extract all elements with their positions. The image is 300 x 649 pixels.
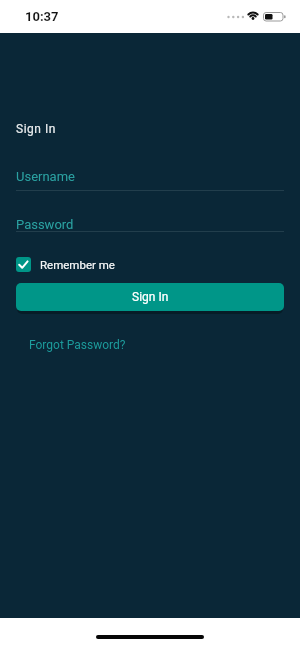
staticText: Forgot Password? — [29, 338, 126, 352]
staticText: 10:37 — [25, 9, 59, 24]
button[interactable]: Sign In — [16, 283, 284, 311]
button[interactable] — [16, 167, 284, 192]
staticText: Username — [16, 169, 75, 184]
staticText: Remember me — [40, 258, 115, 271]
staticText: Password — [16, 217, 74, 232]
staticText: Sign In — [16, 122, 56, 136]
button[interactable]: Forgot Password? — [29, 338, 126, 352]
button[interactable] — [16, 214, 284, 239]
staticText: Sign In — [132, 290, 169, 304]
button[interactable]: Remember me — [16, 257, 115, 272]
